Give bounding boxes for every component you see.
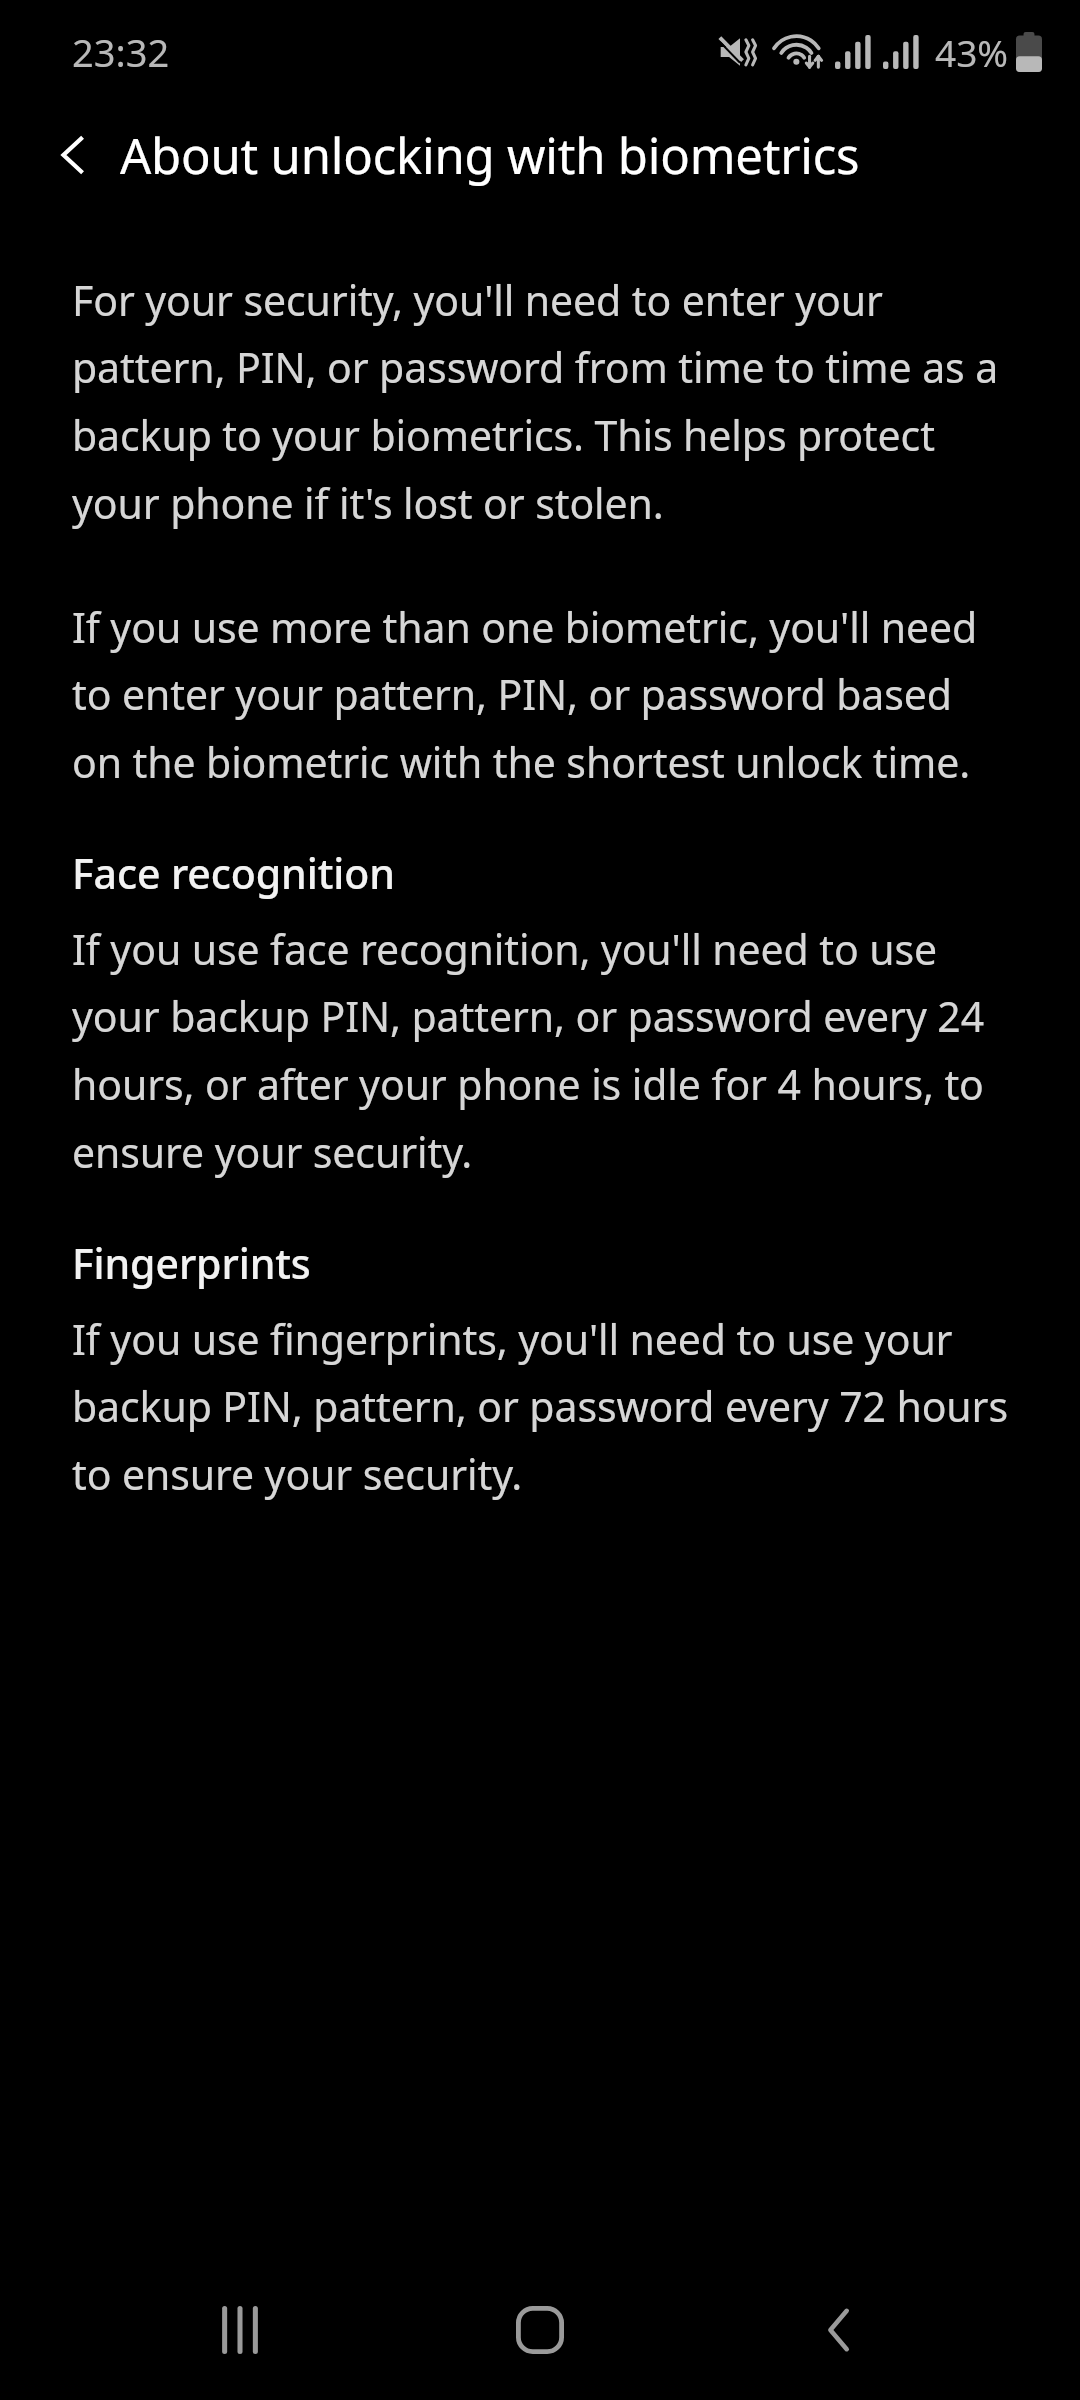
button[interactable]: Navigate up <box>36 117 112 193</box>
staticText: If you use face recognition, you'll need… <box>72 921 1008 1180</box>
staticText: Face recognition <box>72 845 395 901</box>
staticText: About unlocking with biometrics <box>120 122 860 189</box>
button[interactable]: Back <box>750 2260 930 2400</box>
staticText: For your security, you'll need to enter … <box>72 272 1008 531</box>
staticText: 23:32 <box>72 26 170 78</box>
button[interactable]: Home <box>450 2260 630 2400</box>
staticText: If you use fingerprints, you'll need to … <box>72 1311 1008 1502</box>
staticText: Fingerprints <box>72 1235 311 1291</box>
staticText: If you use more than one biometric, you'… <box>72 599 1008 790</box>
staticText: 43% <box>935 27 1009 77</box>
button[interactable]: Recent apps <box>150 2260 330 2400</box>
